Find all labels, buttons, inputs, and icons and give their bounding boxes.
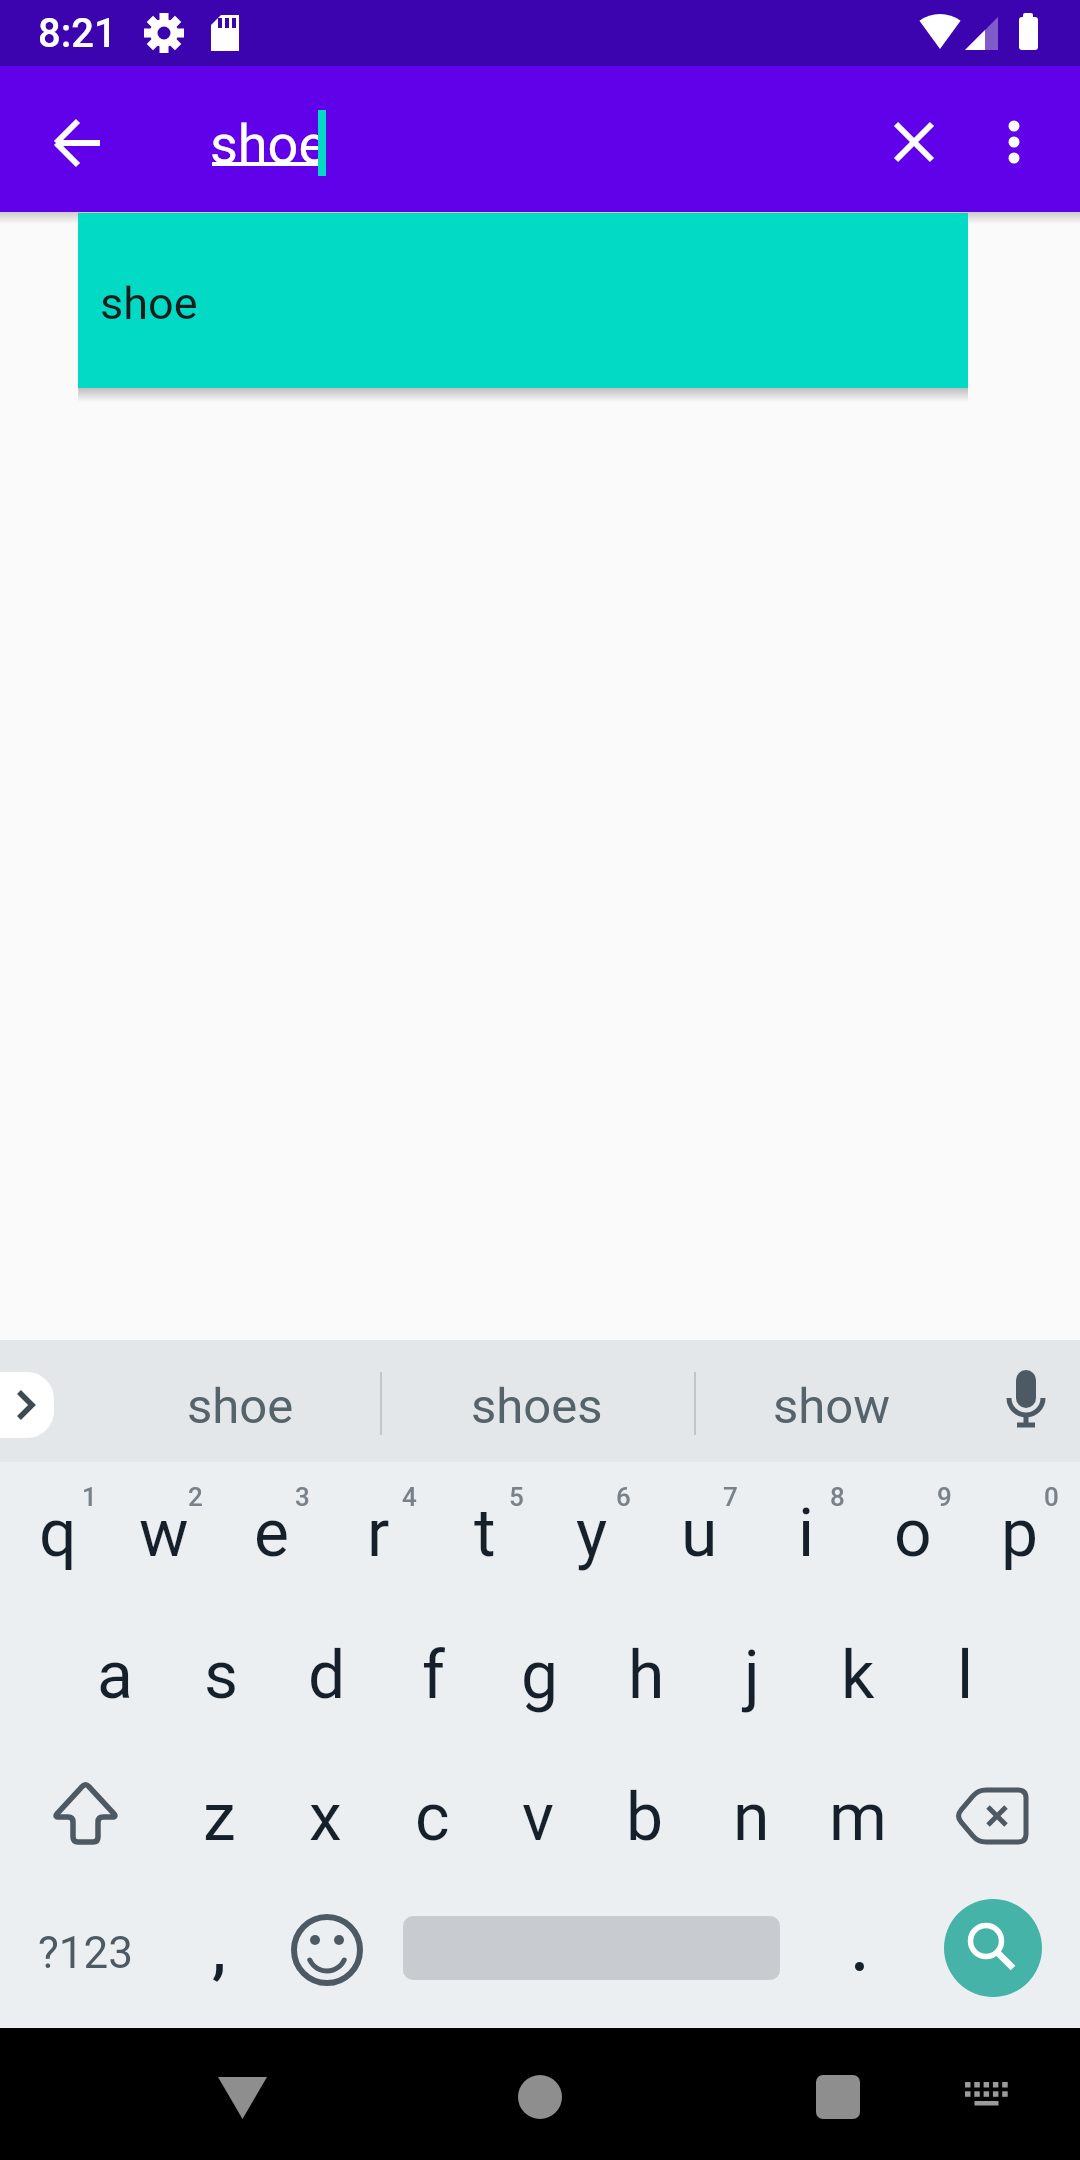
button[interactable]: x <box>272 1746 378 1888</box>
button[interactable]: v <box>485 1746 591 1888</box>
staticText: f <box>422 1637 445 1714</box>
staticText: w <box>139 1495 189 1572</box>
staticText: 9 <box>937 1482 952 1512</box>
staticText: 5 <box>509 1482 524 1512</box>
button[interactable] <box>0 1372 54 1438</box>
staticText: j <box>744 1637 760 1714</box>
staticText: m <box>829 1779 887 1856</box>
staticText: shoes <box>471 1378 603 1435</box>
button[interactable]: s <box>168 1604 274 1746</box>
staticText: 2 <box>188 1482 203 1512</box>
button[interactable]: shoe <box>78 213 968 388</box>
staticText: show <box>773 1378 891 1435</box>
staticText: 6 <box>616 1482 631 1512</box>
staticText: 8 <box>830 1482 845 1512</box>
staticText: t <box>474 1495 496 1572</box>
button[interactable]: a <box>62 1604 168 1746</box>
staticText: q <box>39 1495 77 1572</box>
button[interactable] <box>994 114 1034 170</box>
staticText: b <box>626 1779 664 1856</box>
button[interactable]: j <box>699 1604 805 1746</box>
button[interactable]: z <box>166 1746 272 1888</box>
button[interactable]: show <box>732 1340 932 1462</box>
staticText: c <box>415 1779 450 1856</box>
staticText: n <box>733 1779 770 1856</box>
button[interactable]: b <box>592 1746 698 1888</box>
button[interactable]: , <box>169 1888 269 2018</box>
button[interactable] <box>208 2067 278 2129</box>
button[interactable]: u <box>646 1462 752 1604</box>
button[interactable]: e <box>218 1462 324 1604</box>
button[interactable] <box>803 2062 873 2132</box>
staticText: shoe <box>100 277 198 330</box>
staticText: 1 <box>82 1482 97 1512</box>
button[interactable]: y <box>539 1462 645 1604</box>
button[interactable] <box>944 1899 1042 1997</box>
button[interactable] <box>810 1888 910 2018</box>
staticText: g <box>521 1637 559 1714</box>
staticText: y <box>576 1495 608 1572</box>
staticText: e <box>254 1495 289 1572</box>
button[interactable]: shoe <box>140 1340 340 1462</box>
staticText: 0 <box>1044 1482 1059 1512</box>
staticText: shoe <box>187 1378 294 1435</box>
button[interactable] <box>505 2062 575 2132</box>
button[interactable]: f <box>380 1604 486 1746</box>
button[interactable]: p <box>967 1462 1073 1604</box>
staticText: z <box>203 1779 236 1856</box>
staticText: l <box>957 1637 974 1714</box>
button[interactable]: w <box>111 1462 217 1604</box>
staticText: s <box>204 1637 239 1714</box>
staticText: shoe <box>210 113 328 176</box>
staticText: r <box>367 1495 390 1572</box>
staticText: o <box>894 1495 932 1572</box>
staticText: 7 <box>723 1482 738 1512</box>
button[interactable]: shoe <box>212 66 872 212</box>
staticText: 4 <box>402 1482 417 1512</box>
staticText: p <box>1001 1495 1039 1572</box>
button[interactable]: m <box>805 1746 911 1888</box>
button[interactable]: c <box>379 1746 485 1888</box>
button[interactable] <box>950 1782 1034 1854</box>
staticText: v <box>522 1779 554 1856</box>
button[interactable]: i <box>753 1462 859 1604</box>
staticText: ?123 <box>38 1927 133 1979</box>
button[interactable]: t <box>432 1462 538 1604</box>
button[interactable] <box>886 114 942 170</box>
button[interactable]: r <box>325 1462 431 1604</box>
staticText: i <box>798 1495 815 1572</box>
staticText: d <box>308 1637 346 1714</box>
button[interactable] <box>955 2068 1019 2124</box>
button[interactable]: l <box>912 1604 1018 1746</box>
button[interactable] <box>1000 1366 1052 1438</box>
staticText: k <box>841 1637 875 1714</box>
button[interactable]: h <box>593 1604 699 1746</box>
button[interactable]: o <box>860 1462 966 1604</box>
button[interactable]: ?123 <box>25 1888 145 2018</box>
staticText: , <box>212 1912 227 1987</box>
button[interactable] <box>289 1912 365 1988</box>
staticText: a <box>97 1637 133 1714</box>
button[interactable]: k <box>805 1604 911 1746</box>
staticText: h <box>628 1637 665 1714</box>
button[interactable] <box>40 1774 124 1862</box>
staticText: x <box>309 1779 342 1856</box>
button[interactable]: d <box>274 1604 380 1746</box>
button[interactable]: n <box>698 1746 804 1888</box>
button[interactable]: g <box>487 1604 593 1746</box>
button[interactable]: shoes <box>437 1340 637 1462</box>
button[interactable]: q <box>5 1462 111 1604</box>
staticText: 3 <box>295 1482 310 1512</box>
button[interactable] <box>50 115 106 171</box>
staticText: u <box>681 1495 718 1572</box>
staticText: 8:21 <box>38 10 117 57</box>
